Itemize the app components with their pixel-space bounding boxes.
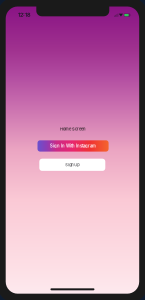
staticText: Sign In With Instagram [50,143,96,148]
staticText: 12:18 [18,11,30,18]
staticText: Home Screen [60,126,85,131]
button[interactable]: Sign In With Instagram [37,140,109,152]
staticText: Sign Up [65,162,79,167]
button[interactable]: Sign Up [39,159,105,171]
